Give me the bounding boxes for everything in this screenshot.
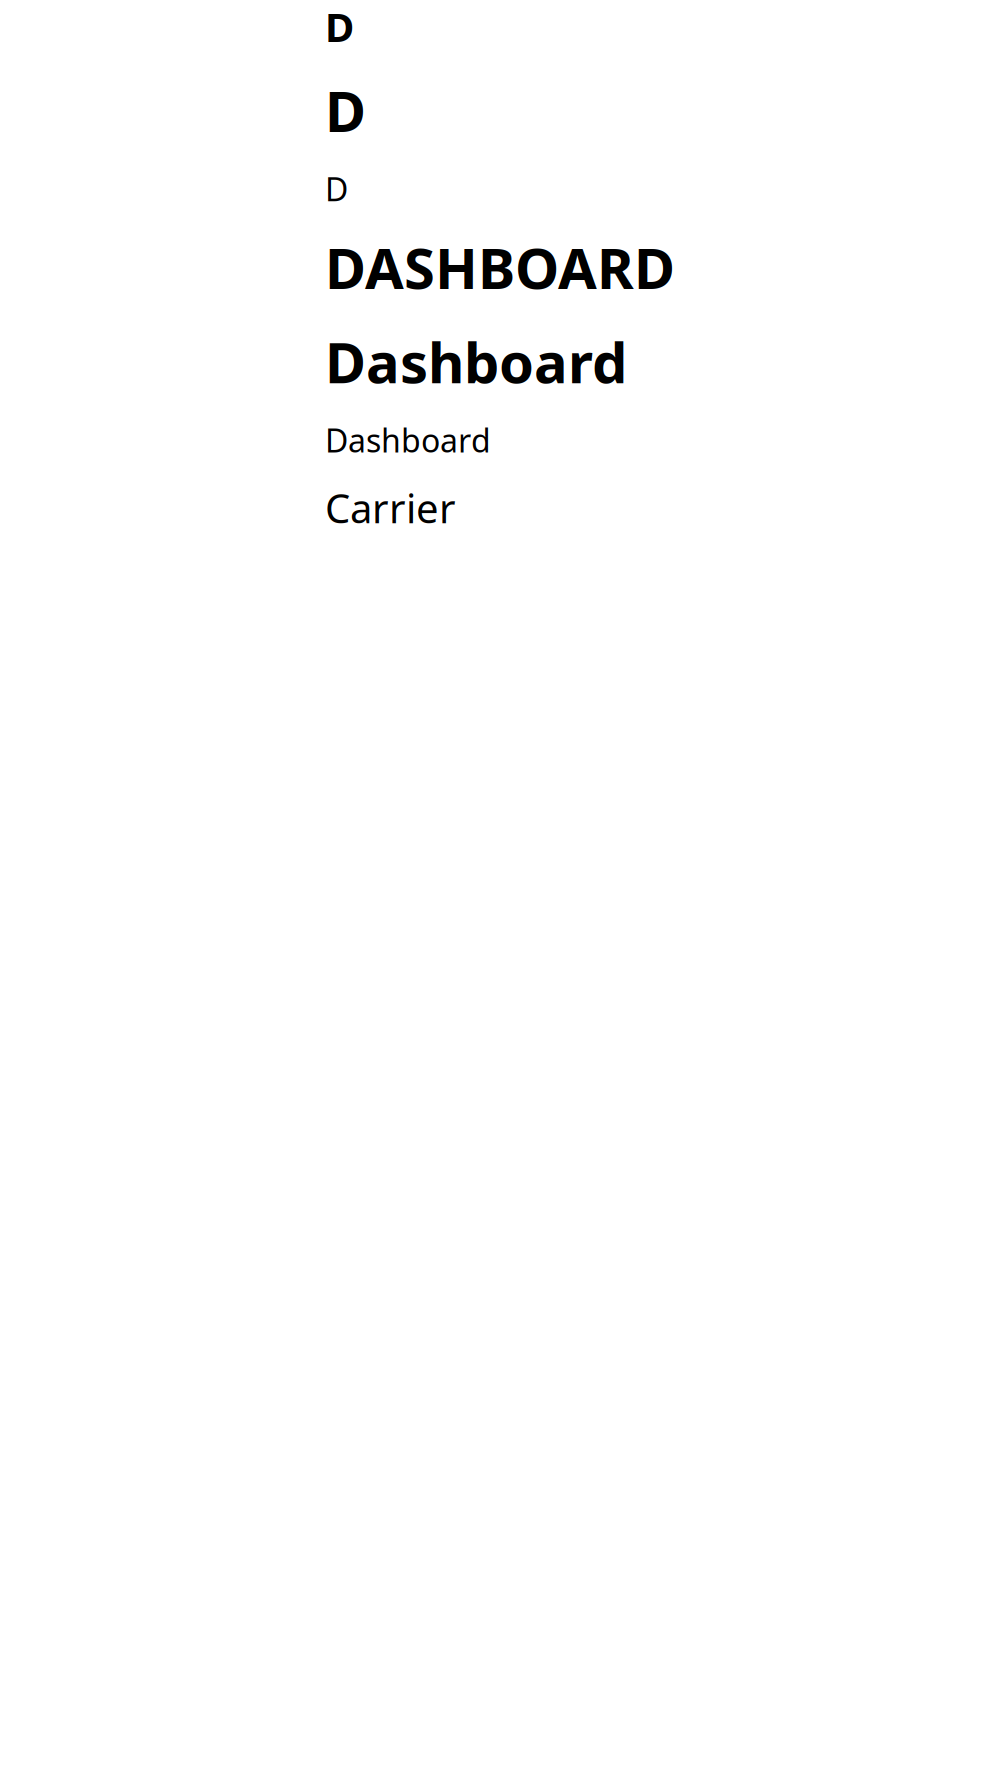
staticText: Dashboard <box>325 324 627 399</box>
staticText: DASHBOARD <box>325 230 675 304</box>
staticText: D <box>325 73 366 147</box>
staticText: Dashboard <box>325 419 491 461</box>
staticText: D <box>325 167 348 210</box>
staticText: Carrier <box>325 481 456 534</box>
staticText: D <box>325 0 354 53</box>
